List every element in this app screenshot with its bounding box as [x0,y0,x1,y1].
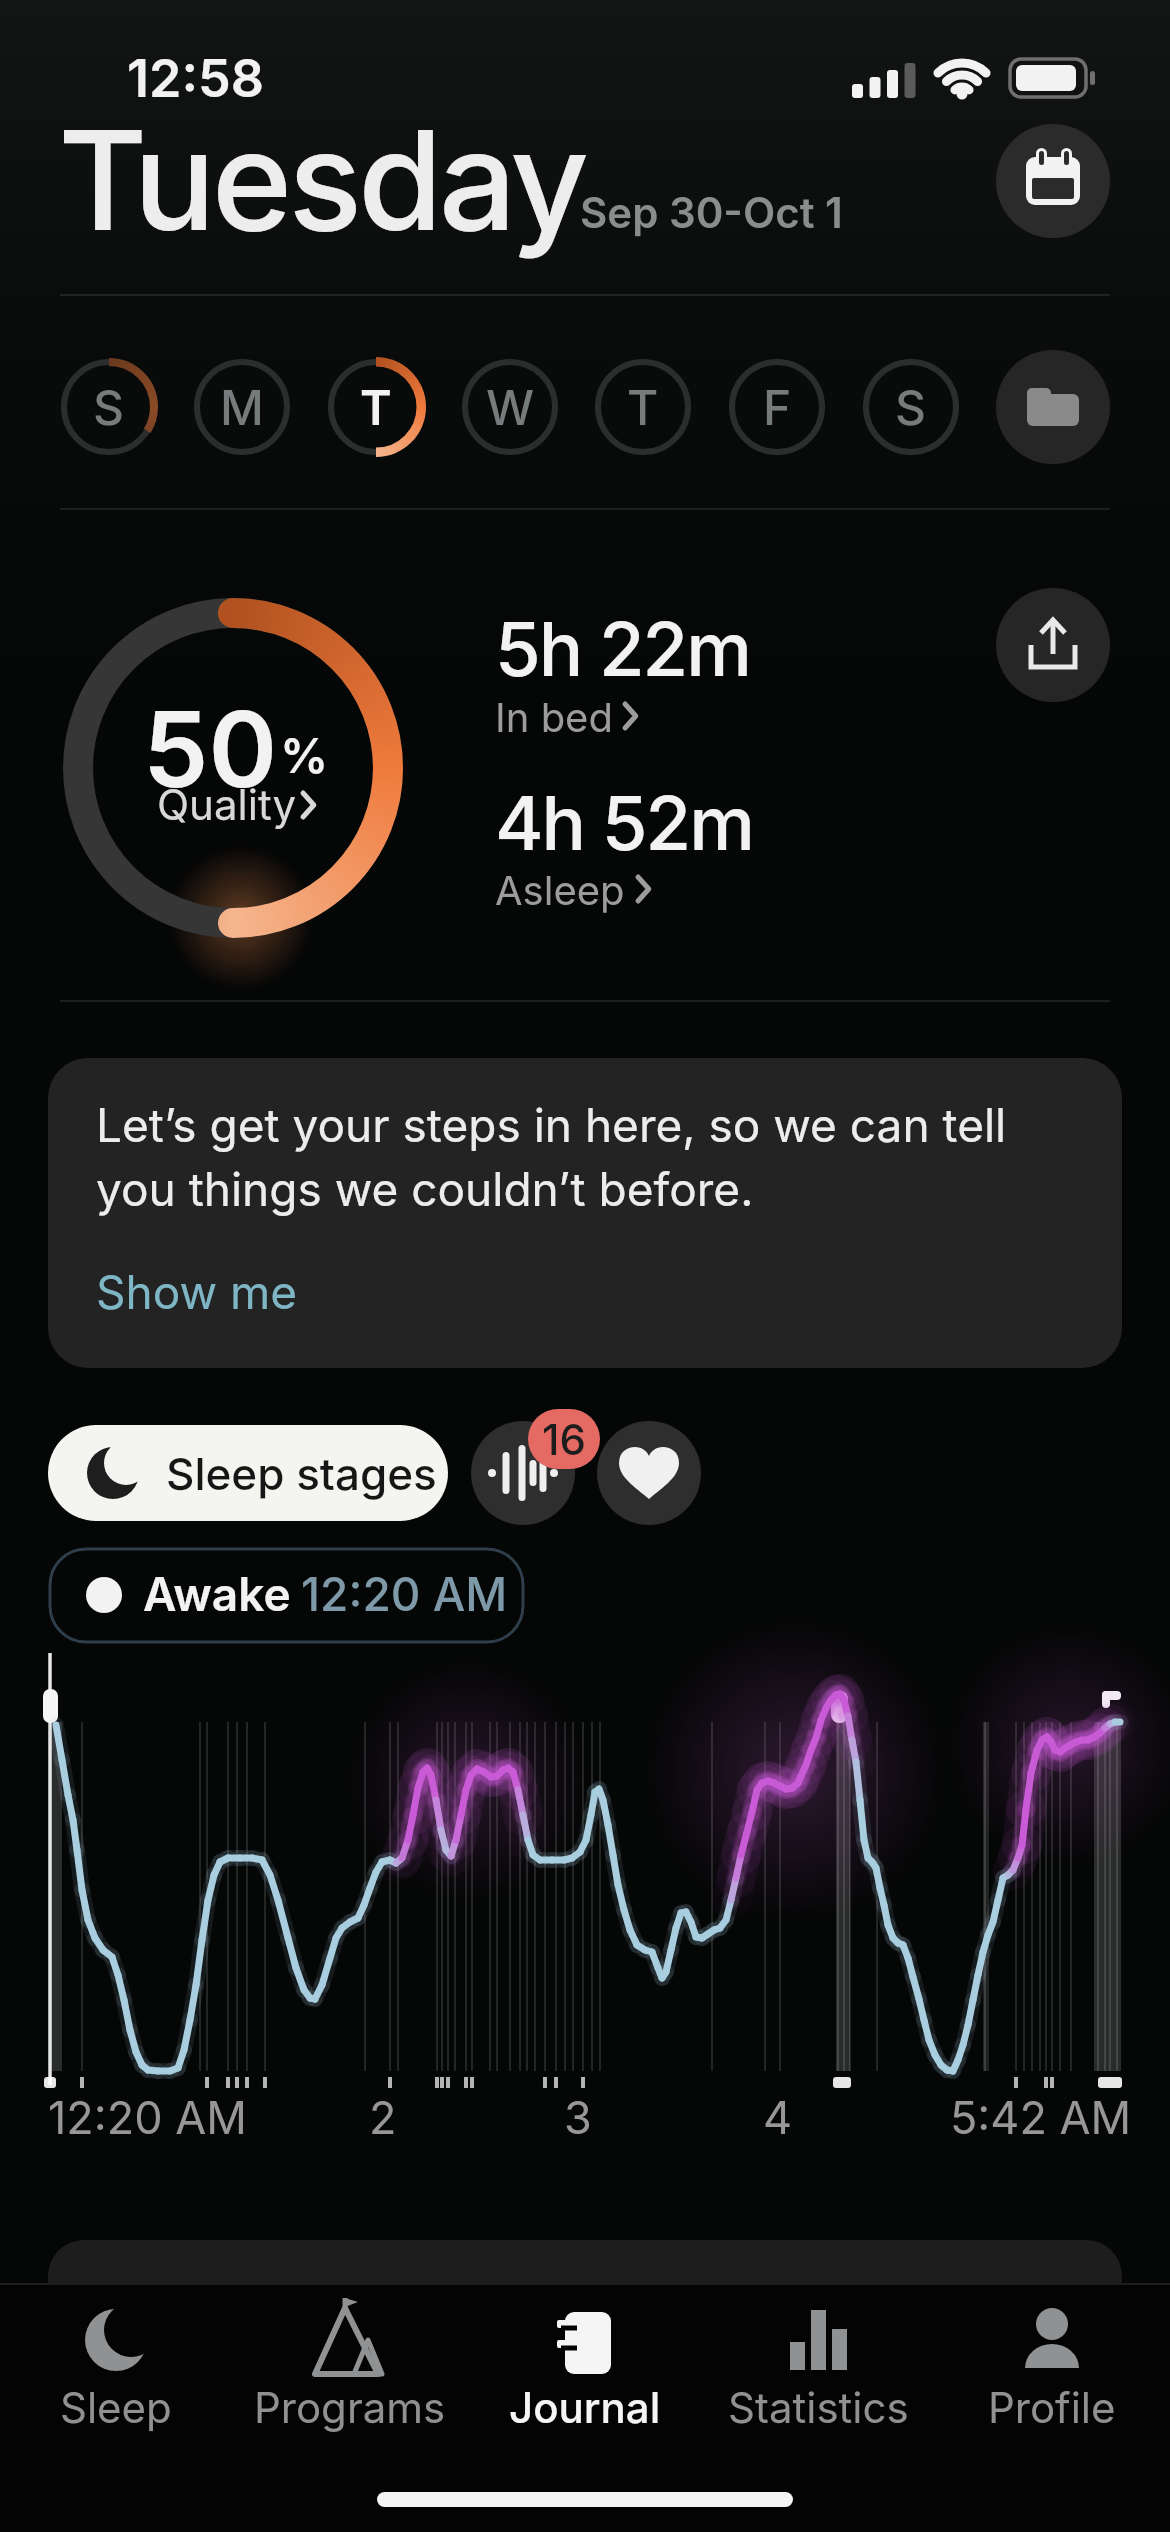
button[interactable]: S [59,357,159,457]
staticText: 5h 22m [495,604,750,694]
button[interactable]: Journal [465,2292,705,2452]
button[interactable]: F [727,357,827,457]
staticText: 4h 52m [495,778,753,868]
staticText: Let’s get your steps in here, so we can … [96,1097,1007,1153]
staticText: 4 [763,2090,793,2144]
staticText: 12:58 [127,47,264,110]
staticText: M [220,378,264,436]
staticText: 2 [369,2090,397,2144]
staticText: Quality [157,779,297,830]
staticText: T [627,378,659,436]
staticText: W [486,378,535,436]
button[interactable]: Statistics [698,2292,938,2452]
staticText: Profile [988,2382,1116,2433]
button[interactable]: Quality [157,779,297,830]
staticText: S [895,378,927,436]
staticText: Tuesday [58,97,586,263]
button[interactable]: Let’s get your steps in here, so we can … [48,1058,1122,1368]
staticText: 50 [143,686,278,812]
button[interactable] [471,1421,575,1525]
button[interactable] [996,350,1110,464]
staticText: Statistics [728,2382,909,2433]
staticText: 12:20 AM [48,2090,247,2144]
button[interactable]: 5h 22m [0,0,255,90]
staticText: F [763,378,792,436]
staticText: % [280,726,329,784]
button[interactable]: 4h 52m [0,0,258,90]
button[interactable]: M [192,357,292,457]
staticText: Programs [254,2382,446,2433]
staticText: S [93,378,125,436]
staticText: Show me [96,1264,298,1320]
staticText: Journal [509,2382,661,2433]
staticText: 12:20 AM [301,1566,508,1622]
button[interactable]: S [861,357,961,457]
staticText: 5:42 AM [950,2090,1132,2144]
staticText: 3 [564,2090,592,2144]
button[interactable]: T [593,357,693,457]
staticText: T [360,378,392,436]
button[interactable]: T [326,357,426,457]
staticText: you things we couldn’t before. [96,1161,754,1217]
button[interactable] [996,124,1110,238]
button[interactable] [996,588,1110,702]
staticText: Sleep stages [166,1447,437,1500]
button[interactable]: Sleep [0,2292,236,2452]
staticText: Sep 30-Oct 1 [580,187,843,238]
button[interactable]: Programs [230,2292,470,2452]
staticText: Awake [143,1566,291,1622]
button[interactable]: Show me [96,1264,298,1320]
staticText: Sleep [60,2382,172,2433]
button[interactable]: W [460,357,560,457]
button[interactable] [597,1421,701,1525]
button[interactable]: Sleep stages [48,1425,448,1521]
staticText: 16 [542,1414,586,1465]
staticText: Asleep [495,866,625,914]
button[interactable]: Profile [932,2292,1170,2452]
staticText: In bed [495,693,613,741]
